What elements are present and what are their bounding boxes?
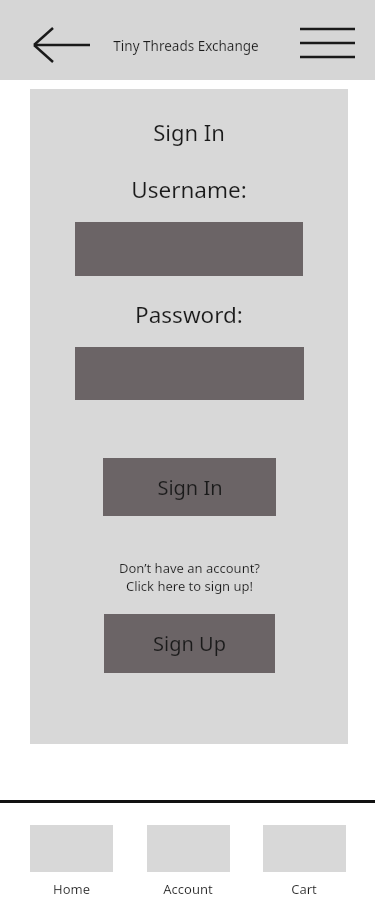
button[interactable]: Account (139, 825, 237, 898)
button[interactable]: Home (22, 825, 120, 898)
staticText: Password: (135, 299, 243, 330)
staticText: Account (163, 880, 213, 898)
staticText: Sign Up (153, 630, 226, 657)
staticText: Home (53, 880, 90, 898)
staticText: Tiny Threads Exchange (113, 37, 259, 55)
staticText: Don’t have an account? Click here to sig… (119, 559, 260, 595)
button[interactable]: Sign In (103, 458, 276, 516)
staticText: Sign In (157, 474, 223, 501)
button[interactable]: Sign Up (104, 614, 275, 673)
staticText: Cart (291, 880, 317, 898)
button[interactable]: Don’t have an account? Click here to sig… (79, 559, 299, 595)
button[interactable]: Cart (255, 825, 353, 898)
staticText: Username: (131, 174, 247, 205)
staticText: Sign In (153, 117, 225, 147)
button[interactable]: Menu (296, 22, 360, 64)
button[interactable]: Back (24, 22, 98, 68)
